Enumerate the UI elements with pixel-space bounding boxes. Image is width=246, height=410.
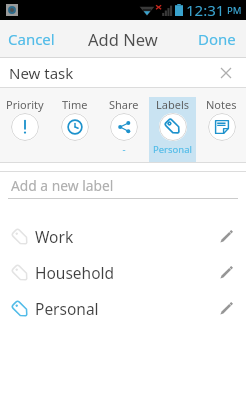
button[interactable]: Add a new label: [0, 172, 246, 199]
staticText: Work: [35, 226, 74, 247]
staticText: Priority: [6, 97, 44, 112]
button[interactable]: Clear task name: [211, 58, 241, 88]
staticText: Share: [109, 97, 139, 112]
button[interactable]: Notes: [198, 97, 245, 162]
button[interactable]: Personal: [0, 290, 246, 326]
staticText: New task: [9, 63, 74, 83]
staticText: Personal: [35, 298, 99, 319]
button[interactable]: Edit Personal: [209, 291, 243, 325]
button[interactable]: Priority: [1, 97, 49, 162]
staticText: Labels: [156, 97, 190, 112]
button[interactable]: Done: [188, 20, 246, 58]
button[interactable]: Edit Household: [209, 255, 243, 289]
staticText: Add a new label: [11, 176, 114, 195]
staticText: Household: [35, 262, 115, 283]
staticText: Time: [62, 97, 88, 112]
staticText: -: [122, 143, 126, 156]
staticText: Personal: [153, 143, 192, 156]
button[interactable]: Work: [0, 218, 246, 254]
button[interactable]: Time: [51, 97, 98, 162]
staticText: 12:31: [186, 0, 225, 20]
button[interactable]: Labels: [149, 97, 196, 162]
staticText: Done: [198, 29, 236, 49]
button[interactable]: Cancel: [0, 20, 62, 58]
staticText: PM: [227, 4, 242, 17]
button[interactable]: Household: [0, 254, 246, 290]
button[interactable]: Edit Work: [209, 219, 243, 253]
button[interactable]: Share: [100, 97, 147, 162]
staticText: Cancel: [8, 29, 55, 49]
staticText: Notes: [206, 97, 237, 112]
staticText: Add New: [88, 28, 158, 50]
